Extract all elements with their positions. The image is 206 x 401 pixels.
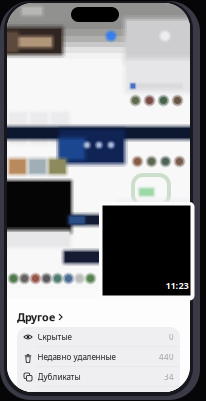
- staticText: 0: [169, 332, 174, 342]
- staticText: 440: [159, 352, 174, 362]
- staticText: Скрытые: [37, 332, 71, 342]
- button[interactable]: Дубликаты: [17, 367, 180, 387]
- button[interactable]: Picture in picture video: [99, 202, 194, 300]
- button[interactable]: Скрытые: [17, 327, 180, 347]
- button[interactable]: Недавно удаленные: [17, 347, 180, 367]
- staticText: Другое: [17, 310, 55, 324]
- staticText: 34: [164, 372, 174, 382]
- staticText: Дубликаты: [37, 372, 80, 382]
- button[interactable]: Другое: [7, 307, 62, 327]
- staticText: 11:23: [165, 279, 188, 291]
- staticText: Недавно удаленные: [37, 352, 115, 362]
